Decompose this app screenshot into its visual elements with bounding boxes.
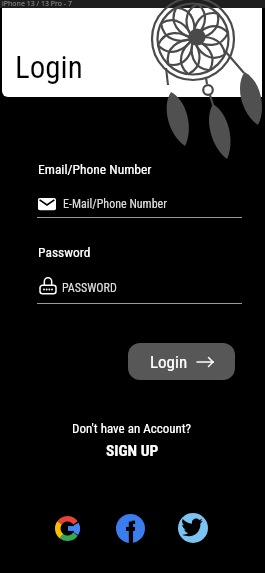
staticText: Don't have an Account?	[72, 421, 192, 436]
staticText: SIGN UP	[106, 442, 159, 460]
button[interactable]: Don't have an Account?	[2, 421, 262, 460]
staticText: iPhone 13 / 13 Pro - 7	[2, 0, 72, 7]
button[interactable]: Login	[128, 343, 235, 380]
button[interactable]: Sign in with Google	[51, 512, 83, 544]
staticText: Password	[38, 244, 91, 260]
staticText: E-Mail/Phone Number	[63, 197, 167, 211]
staticText: Email/Phone Number	[38, 161, 152, 177]
button[interactable]: Sign in with Twitter	[177, 512, 209, 544]
staticText: Login	[15, 49, 83, 85]
staticText: PASSWORD	[62, 281, 117, 295]
staticText: Login	[150, 352, 188, 372]
button[interactable]: Sign in with Facebook	[114, 512, 146, 544]
